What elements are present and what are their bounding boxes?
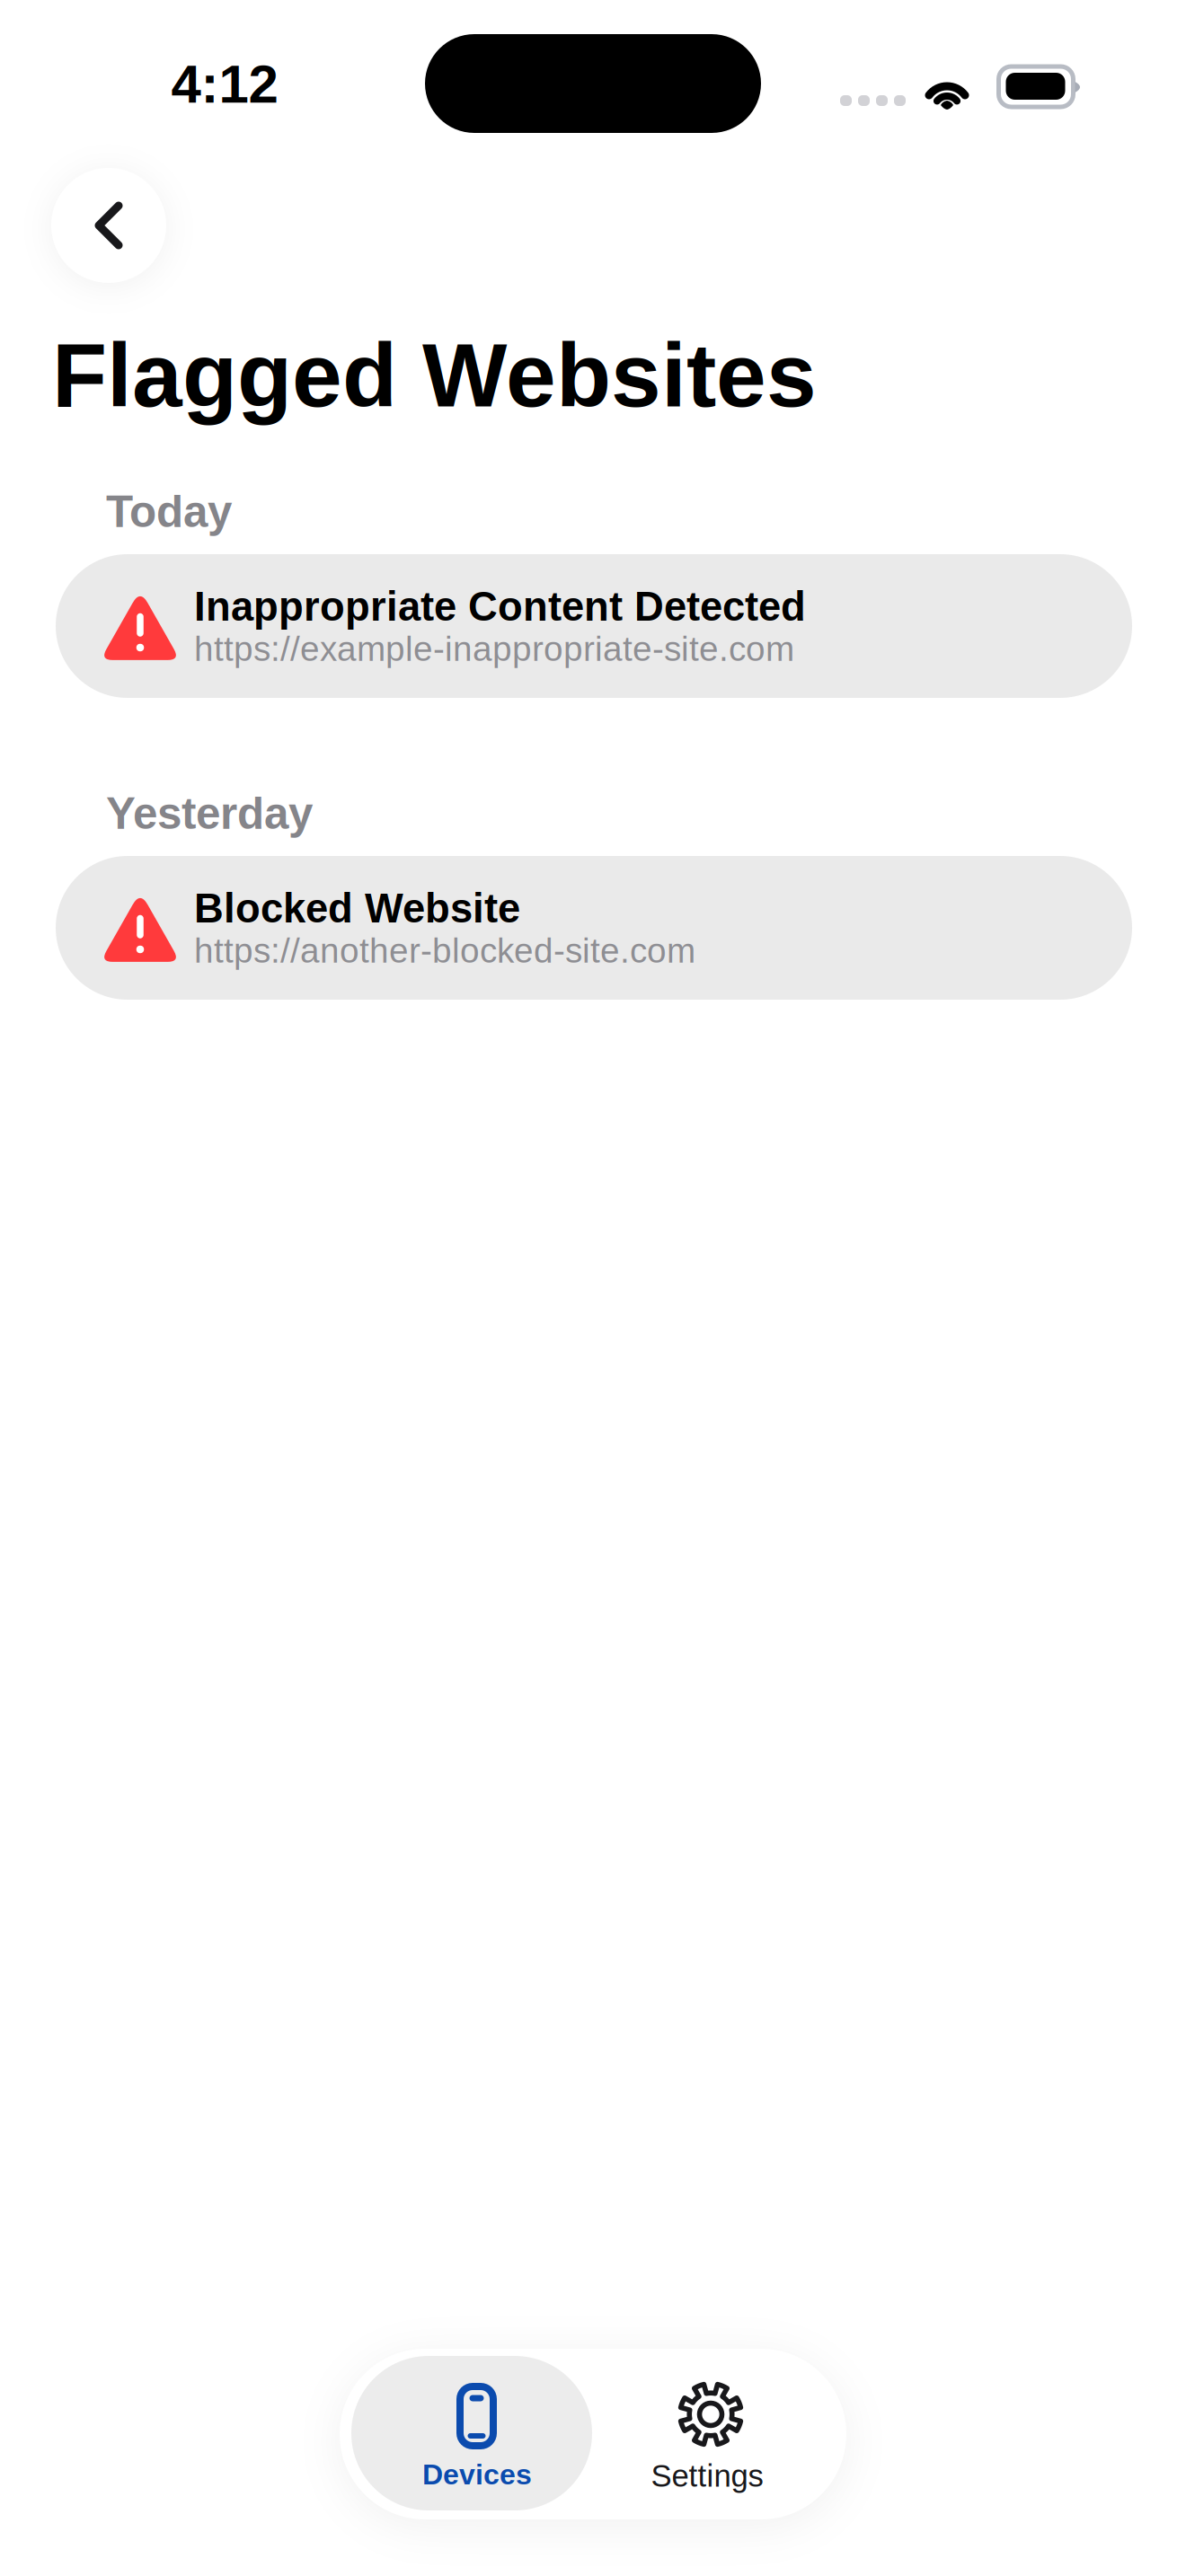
button[interactable]: Back xyxy=(51,168,166,283)
staticText: Today xyxy=(106,487,232,536)
staticText: Devices xyxy=(422,2458,532,2490)
staticText: 4:12 xyxy=(171,54,278,114)
staticText: Blocked Website xyxy=(194,886,520,931)
button[interactable]: Devices xyxy=(351,2356,592,2510)
staticText: Yesterday xyxy=(106,789,313,838)
staticText: https://example-inappropriate-site.com xyxy=(194,629,794,668)
staticText: Settings xyxy=(651,2458,763,2493)
button[interactable]: Blocked Website xyxy=(56,856,1132,1000)
staticText: https://another-blocked-site.com xyxy=(194,931,695,970)
staticText: Flagged Websites xyxy=(52,325,817,425)
button[interactable]: Inappropriate Content Detected xyxy=(56,554,1132,698)
button[interactable]: Settings xyxy=(594,2356,835,2510)
staticText: Inappropriate Content Detected xyxy=(194,584,806,629)
